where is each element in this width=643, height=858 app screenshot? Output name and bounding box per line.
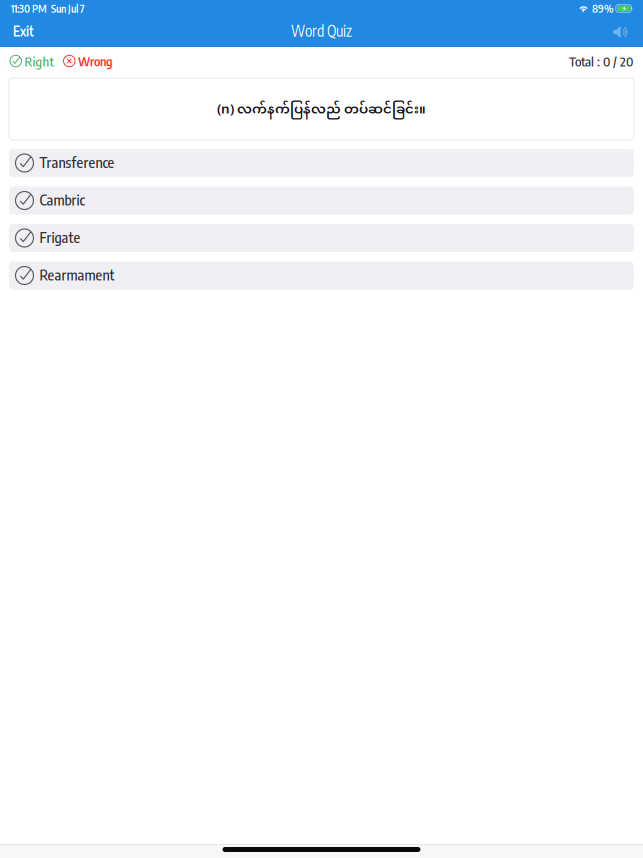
staticText: Rearmament (39, 265, 114, 284)
staticText: Word Quiz (291, 21, 352, 40)
staticText: Frigate (39, 228, 80, 246)
staticText: Cambric (39, 190, 85, 209)
button[interactable]: Frigate (9, 224, 634, 252)
staticText: 89% (592, 2, 614, 15)
button[interactable]: Transference (9, 149, 634, 177)
button[interactable]: Cambric (9, 186, 634, 214)
staticText: (n) လက်နက်ပြန်လည် တပ်ဆင်ခြင်း။ (217, 96, 426, 125)
staticText: Sun Jul 7 (51, 2, 85, 15)
staticText: Exit (13, 23, 34, 39)
staticText: Right (24, 53, 53, 69)
staticText: Total : 0 / 20 (569, 53, 633, 69)
button[interactable]: Wrong (58, 45, 117, 79)
staticText: 11:30 PM (11, 2, 47, 15)
button[interactable]: Right (0, 45, 58, 79)
button[interactable]: Rearmament (9, 261, 634, 289)
staticText: Transference (39, 153, 114, 171)
button[interactable]: Pronounce word (601, 17, 643, 47)
staticText: Wrong (78, 53, 112, 69)
button[interactable]: Exit (0, 17, 47, 47)
